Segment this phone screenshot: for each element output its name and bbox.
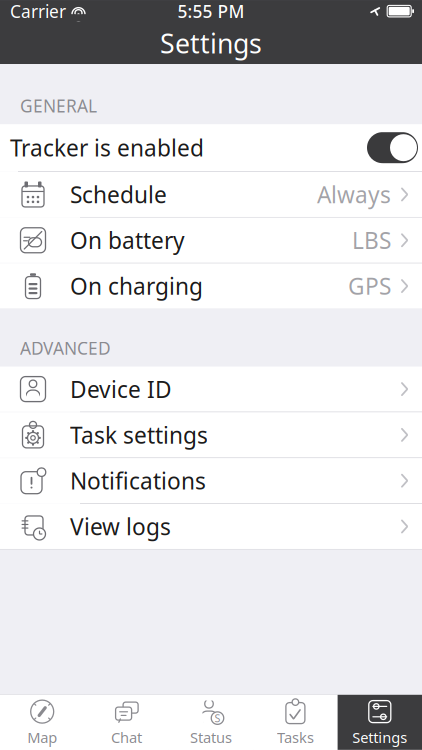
staticText: 5:55 PM	[177, 0, 244, 23]
button[interactable]: Tracker is enabled	[0, 124, 422, 171]
staticText: Always	[317, 179, 391, 209]
button[interactable]: Tasks	[253, 695, 338, 750]
staticText: Settings	[352, 728, 407, 747]
staticText: Carrier	[10, 0, 66, 23]
staticText: Map	[27, 728, 57, 747]
staticText: View logs	[70, 511, 171, 541]
button[interactable]: Chat	[84, 695, 169, 750]
button[interactable]: On battery	[0, 218, 422, 263]
button[interactable]: Task settings	[0, 412, 422, 457]
staticText: Tracker is enabled	[10, 133, 204, 163]
staticText: Status	[190, 728, 232, 747]
button[interactable]: View logs	[0, 504, 422, 549]
button[interactable]: S	[169, 695, 253, 750]
staticText: Device ID	[70, 374, 172, 404]
staticText: Tasks	[277, 728, 314, 747]
staticText: On charging	[70, 271, 203, 301]
staticText: LBS	[352, 225, 391, 255]
staticText: Notifications	[70, 466, 206, 496]
button[interactable]: Map	[0, 695, 84, 750]
staticText: GPS	[348, 271, 391, 301]
staticText: ADVANCED	[20, 337, 111, 360]
staticText: S	[214, 711, 220, 725]
staticText: Task settings	[70, 420, 208, 450]
button[interactable]: Schedule	[0, 172, 422, 217]
staticText: Settings	[160, 25, 262, 61]
button[interactable]: Device ID	[0, 367, 422, 412]
button[interactable]: Notifications	[0, 458, 422, 503]
staticText: GENERAL	[20, 94, 97, 117]
staticText: Chat	[111, 728, 142, 747]
button[interactable]: Settings	[338, 695, 422, 750]
staticText: Schedule	[70, 179, 167, 209]
button[interactable]: On charging	[0, 264, 422, 309]
staticText: On battery	[70, 225, 185, 255]
